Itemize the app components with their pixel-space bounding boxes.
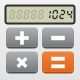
button[interactable]: Add <box>6 27 38 48</box>
button[interactable]: Multiply <box>6 51 38 73</box>
button[interactable]: Subtract <box>42 27 74 48</box>
button[interactable]: Equals <box>42 51 74 73</box>
